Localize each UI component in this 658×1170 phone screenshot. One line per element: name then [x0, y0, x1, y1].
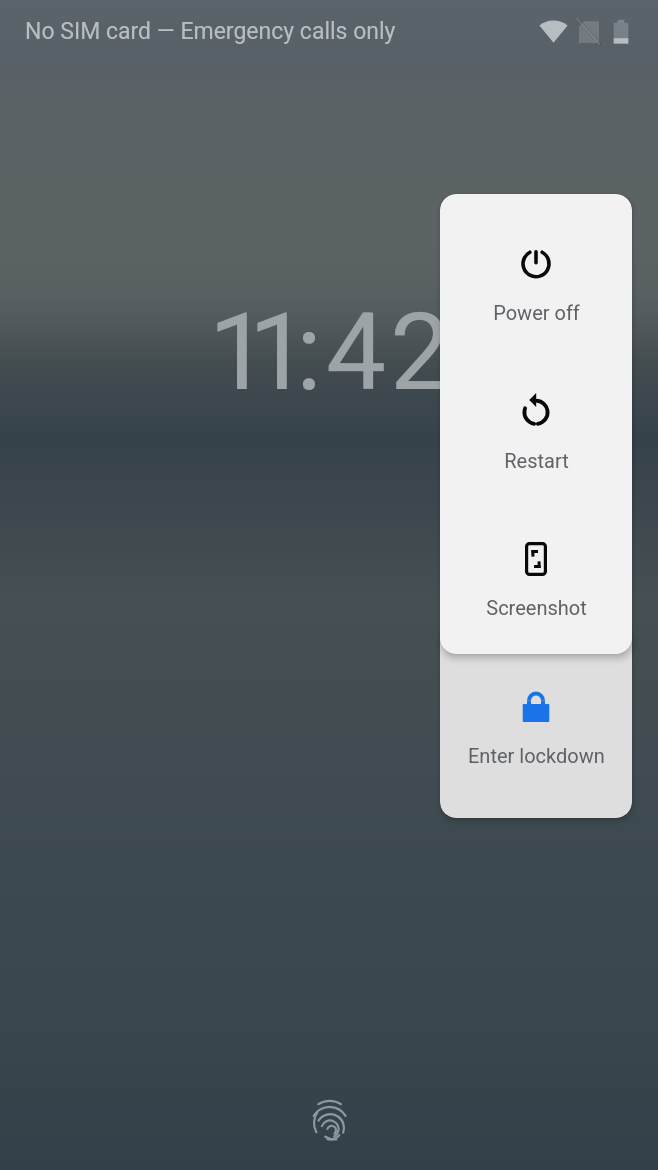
staticText: 4 [326, 290, 380, 415]
staticText: Enter lockdown [468, 744, 605, 767]
button[interactable]: Restart [440, 361, 632, 496]
staticText: No SIM card — Emergency calls only [25, 18, 396, 45]
staticText: : [296, 290, 316, 415]
staticText: Power off [493, 301, 580, 324]
staticText: 2 [390, 290, 444, 415]
button[interactable]: Power off [440, 216, 632, 351]
staticText: 11 [213, 290, 293, 415]
button[interactable]: Fingerprint unlock [306, 1097, 354, 1149]
button[interactable]: Screenshot [440, 507, 632, 642]
staticText: Restart [504, 449, 569, 472]
staticText: Screenshot [486, 596, 587, 619]
button[interactable]: Enter lockdown [440, 624, 632, 818]
